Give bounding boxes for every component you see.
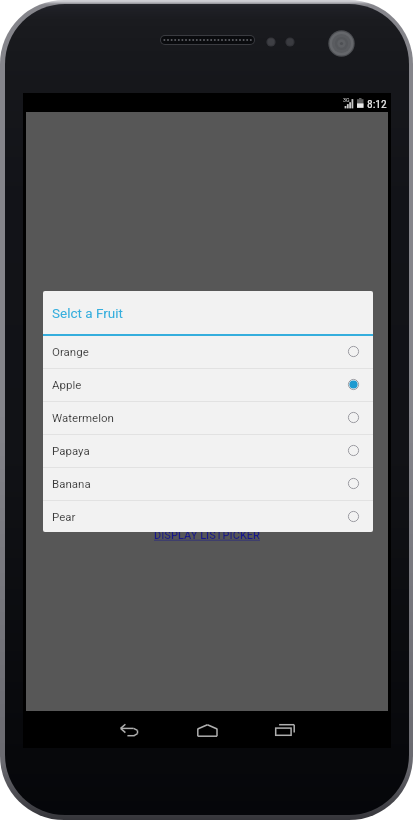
staticText: Apple [52, 378, 82, 391]
button[interactable]: Watermelon [43, 401, 373, 434]
button[interactable]: Recent apps [261, 712, 309, 748]
staticText: Papaya [52, 444, 90, 457]
button[interactable]: Apple [43, 368, 373, 401]
button[interactable]: Pear [43, 500, 373, 532]
button[interactable]: Papaya [43, 434, 373, 467]
button[interactable]: DISPLAY LISTPICKER [26, 527, 388, 543]
staticText: Banana [52, 477, 91, 490]
button[interactable]: Banana [43, 467, 373, 500]
button[interactable]: Orange [43, 335, 373, 368]
button[interactable]: Home [183, 712, 231, 748]
staticText: Watermelon [52, 411, 114, 424]
staticText: 3G [343, 96, 350, 103]
button[interactable]: Back [106, 712, 154, 748]
staticText: 8:12 [367, 97, 387, 110]
staticText: Pear [52, 510, 76, 523]
staticText: DISPLAY LISTPICKER [154, 529, 260, 542]
staticText: Selct a Fruit [52, 305, 123, 321]
staticText: Orange [52, 345, 89, 358]
